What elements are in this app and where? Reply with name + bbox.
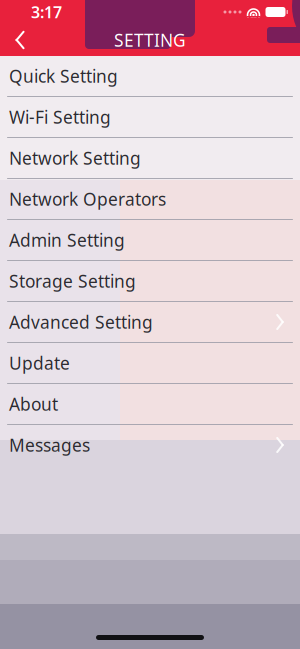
staticText: Advanced Setting xyxy=(9,310,153,333)
button[interactable]: Admin Setting xyxy=(0,220,300,260)
staticText: Network Setting xyxy=(9,146,141,169)
button[interactable]: Network Setting xyxy=(0,138,300,178)
staticText: Network Operators xyxy=(9,187,166,210)
staticText: About xyxy=(9,392,58,415)
button[interactable]: Update xyxy=(0,343,300,383)
staticText: 3:17 xyxy=(31,1,62,23)
button[interactable]: Back xyxy=(0,24,40,56)
staticText: Quick Setting xyxy=(9,64,118,87)
staticText: Storage Setting xyxy=(9,269,136,292)
button[interactable]: Network Operators xyxy=(0,179,300,219)
button[interactable]: Quick Setting xyxy=(0,56,300,96)
button[interactable]: Storage Setting xyxy=(0,261,300,301)
button[interactable]: Messages xyxy=(0,425,300,465)
staticText: SETTING xyxy=(114,28,186,51)
staticText: Update xyxy=(9,351,70,374)
button[interactable]: Wi-Fi Setting xyxy=(0,97,300,137)
staticText: Admin Setting xyxy=(9,228,125,251)
staticText: Wi-Fi Setting xyxy=(9,105,111,128)
button[interactable]: About xyxy=(0,384,300,424)
button[interactable]: Advanced Setting xyxy=(0,302,300,342)
staticText: Messages xyxy=(9,433,90,456)
